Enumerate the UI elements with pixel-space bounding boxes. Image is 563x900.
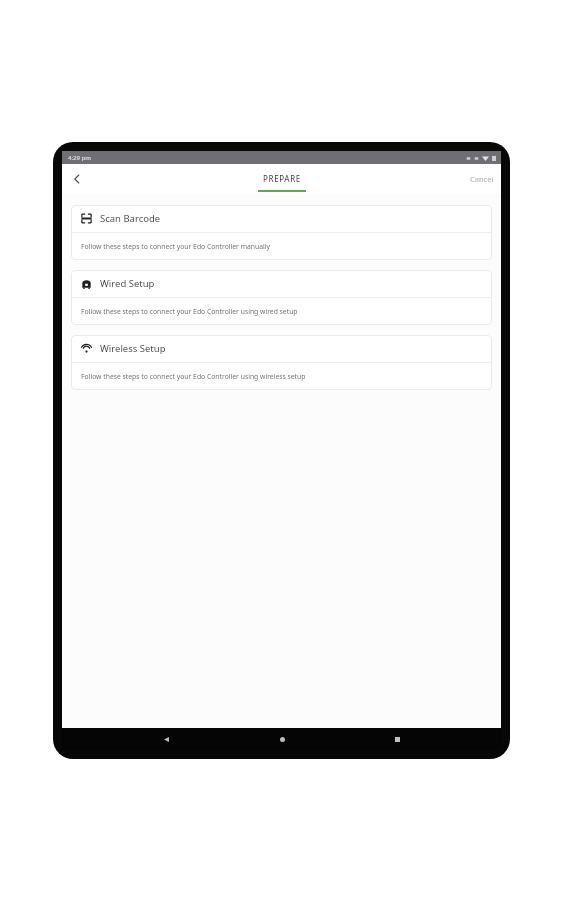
button[interactable]: Back — [66, 168, 88, 190]
staticText: Scan Barcode — [100, 212, 161, 225]
button[interactable]: PREPARE — [258, 167, 306, 192]
button[interactable]: Cancel — [463, 168, 501, 190]
staticText: PREPARE — [263, 173, 301, 184]
button[interactable]: Back — [155, 728, 177, 750]
staticText: Follow these steps to connect your Edo C… — [81, 307, 298, 316]
staticText: 4:29 pm — [68, 154, 91, 162]
staticText: Cancel — [470, 174, 494, 184]
staticText: Follow these steps to connect your Edo C… — [81, 372, 306, 381]
button[interactable]: Recent apps — [386, 728, 408, 750]
button[interactable]: Home — [271, 728, 293, 750]
button[interactable]: Wireless Setup — [71, 335, 492, 390]
staticText: Wired Setup — [100, 277, 155, 290]
staticText: Wireless Setup — [100, 342, 166, 355]
staticText: Follow these steps to connect your Edo C… — [81, 242, 271, 251]
button[interactable]: Wired Setup — [71, 270, 492, 325]
button[interactable]: Scan Barcode — [71, 205, 492, 260]
